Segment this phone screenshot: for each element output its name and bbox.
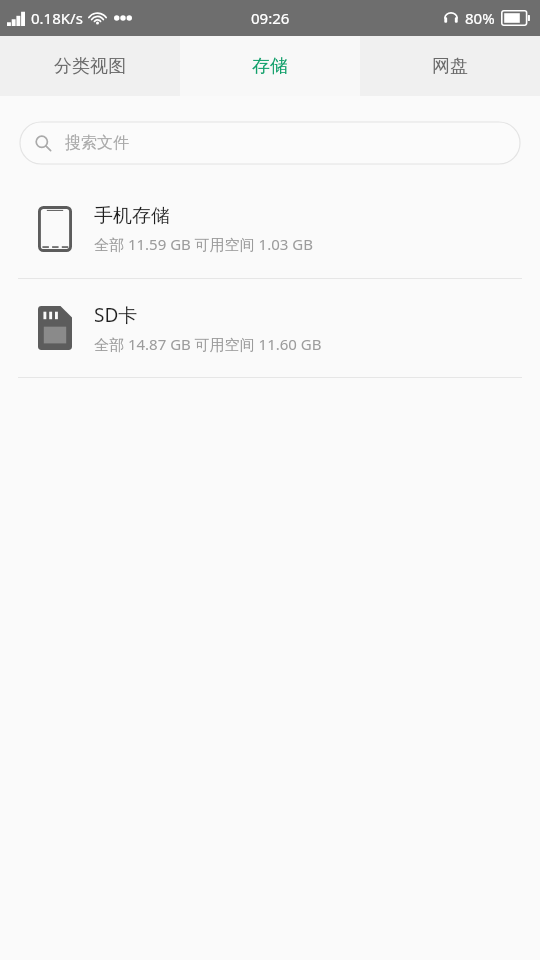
staticText: SD卡 xyxy=(94,302,138,328)
staticText: 网盘 xyxy=(432,55,468,78)
staticText: 搜索文件 xyxy=(65,133,129,153)
staticText: 存储 xyxy=(252,55,288,78)
staticText: 09:26 xyxy=(251,8,290,28)
button[interactable]: SD卡 xyxy=(0,279,540,377)
button[interactable]: 搜索文件 xyxy=(20,122,520,164)
staticText: 80% xyxy=(465,8,495,28)
staticText: 分类视图 xyxy=(54,55,126,78)
staticText: 0.18K/s xyxy=(31,8,83,28)
staticText: 全部 11.59 GB 可用空间 1.03 GB xyxy=(94,234,313,254)
button[interactable]: 存储 xyxy=(180,36,360,96)
staticText: 手机存储 xyxy=(94,204,170,228)
button[interactable]: 分类视图 xyxy=(0,36,180,96)
button[interactable]: 网盘 xyxy=(360,36,540,96)
button[interactable]: 手机存储 xyxy=(0,180,540,278)
staticText: 全部 14.87 GB 可用空间 11.60 GB xyxy=(94,334,322,354)
